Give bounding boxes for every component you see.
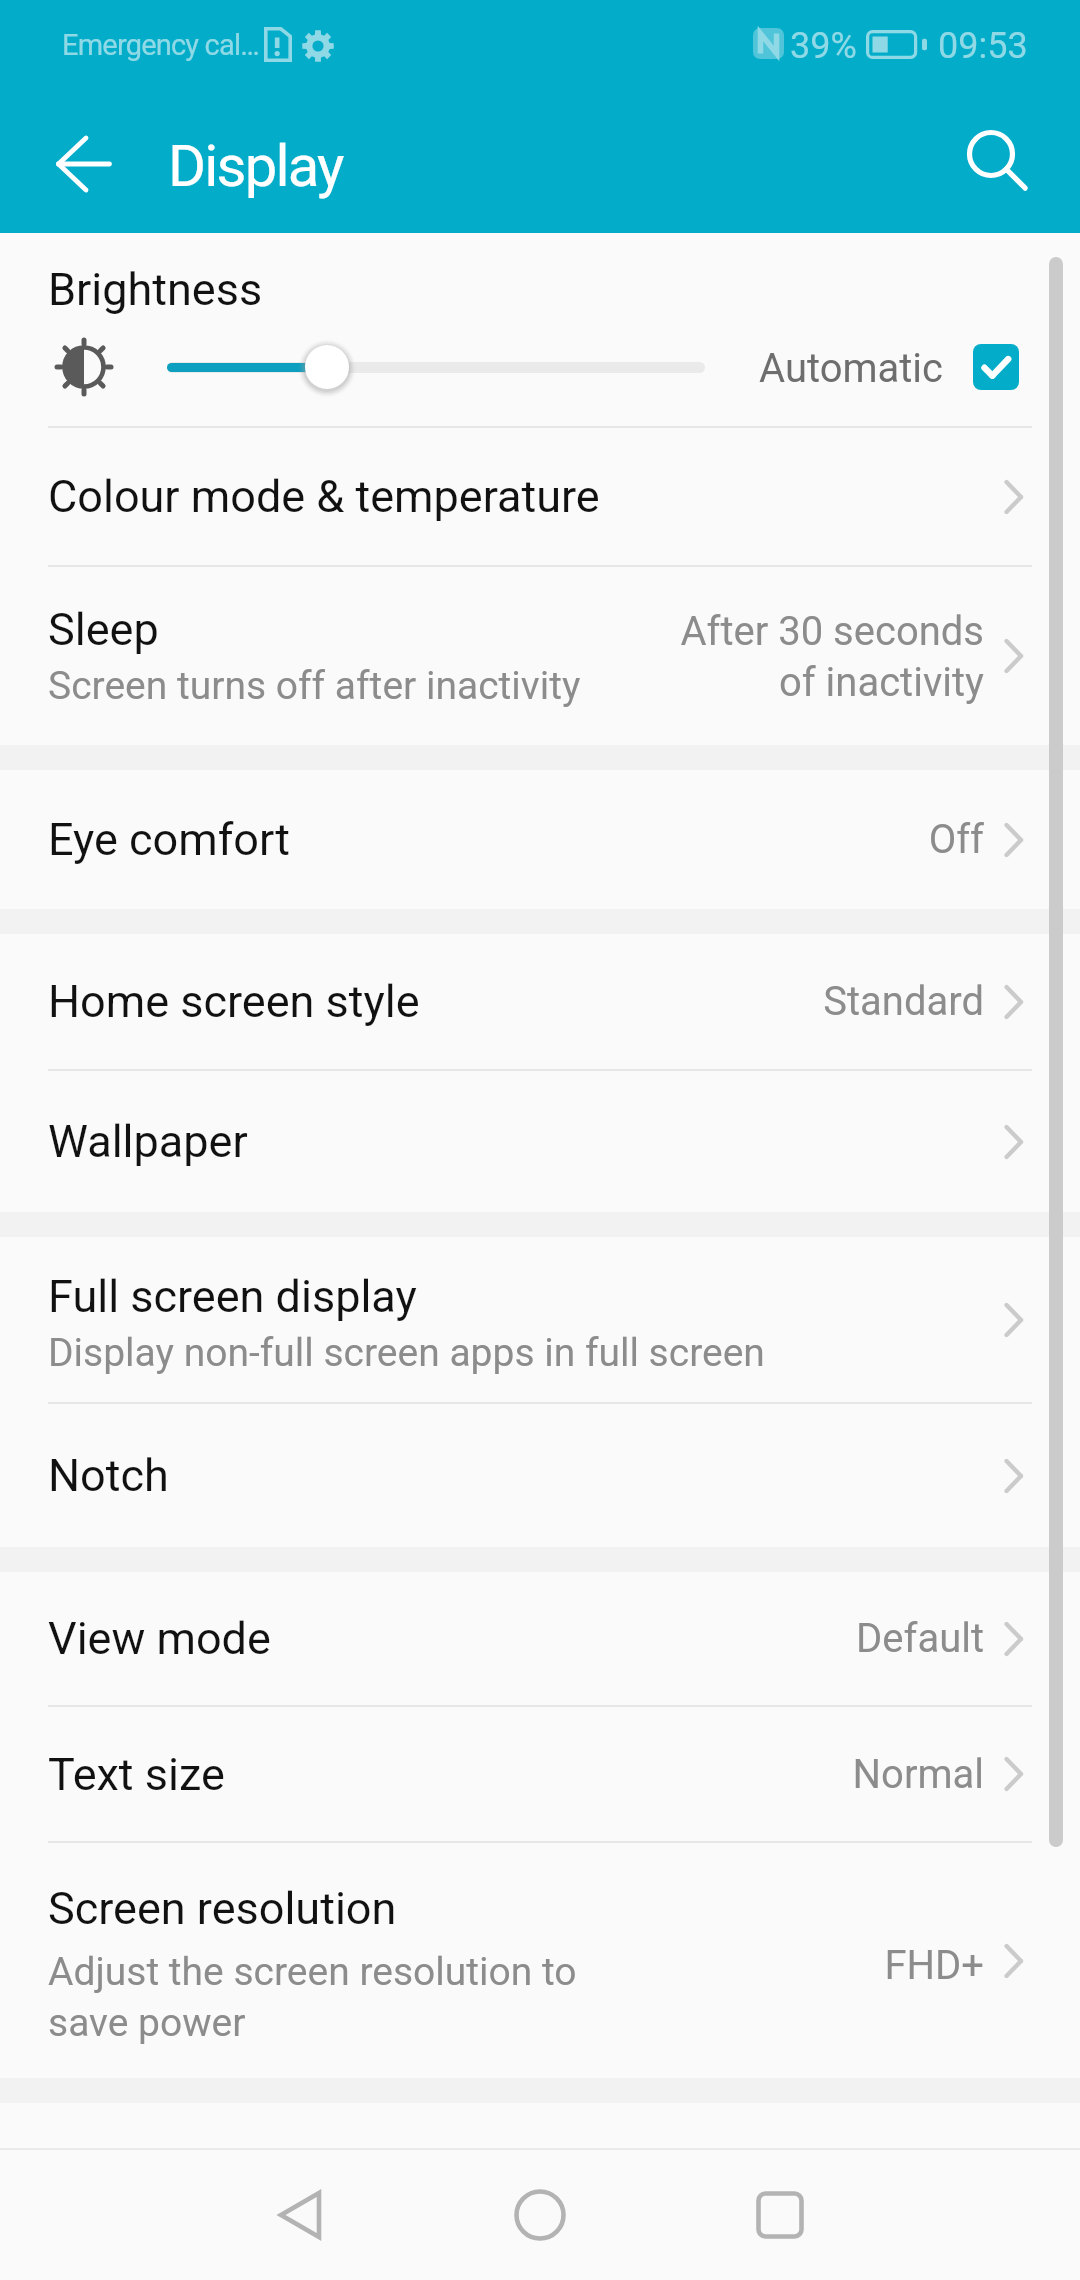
staticText: Colour mode & temperature	[48, 470, 600, 523]
staticText: 09:53	[938, 25, 1028, 67]
staticText: Emergency cal…	[62, 28, 259, 62]
button[interactable]: Text size	[0, 1707, 1080, 1841]
staticText: Notch	[48, 1449, 169, 1502]
button[interactable]: Screen resolution	[0, 1843, 1080, 2078]
staticText: Display non-full screen apps in full scr…	[48, 1330, 765, 1376]
button[interactable]: Eye comfort	[0, 770, 1080, 909]
staticText: Default	[856, 1615, 984, 1662]
button[interactable]: Full screen display	[0, 1237, 1080, 1402]
staticText: Text size	[48, 1748, 225, 1801]
staticText: Off	[928, 816, 984, 863]
staticText: Screen resolution	[48, 1882, 397, 1935]
button[interactable]: Wallpaper	[0, 1071, 1080, 1212]
staticText: Standard	[823, 978, 984, 1025]
button[interactable]: Sleep	[0, 567, 1080, 745]
staticText: Normal	[852, 1751, 984, 1798]
staticText: Home screen style	[48, 975, 420, 1028]
staticText: Sleep	[48, 603, 159, 656]
staticText: Full screen display	[48, 1270, 417, 1323]
staticText: Eye comfort	[48, 813, 291, 866]
button[interactable]: Recents	[715, 2150, 845, 2280]
button[interactable]: View mode	[0, 1572, 1080, 1705]
staticText: View mode	[48, 1612, 271, 1665]
button[interactable]: Search	[938, 102, 1058, 222]
staticText: Display	[168, 132, 343, 200]
button[interactable]: Back	[235, 2150, 365, 2280]
staticText: Adjust the screen resolution to save pow…	[48, 1949, 577, 2045]
button[interactable]: Brightness level	[305, 345, 349, 389]
staticText: Wallpaper	[48, 1115, 248, 1168]
staticText: FHD+	[884, 1942, 984, 1989]
button[interactable]: Back	[24, 104, 144, 224]
button[interactable]: Home screen style	[0, 934, 1080, 1069]
staticText: Automatic	[759, 345, 944, 392]
button[interactable]: Home	[475, 2150, 605, 2280]
button[interactable]: Colour mode & temperature	[0, 428, 1080, 565]
staticText: Screen turns off after inactivity	[48, 663, 581, 709]
button[interactable]: Automatic brightness	[973, 344, 1019, 390]
staticText: Brightness	[48, 263, 263, 316]
staticText: 39%	[790, 25, 857, 67]
button[interactable]: Notch	[0, 1404, 1080, 1547]
staticText: After 30 seconds of inactivity	[680, 608, 984, 705]
